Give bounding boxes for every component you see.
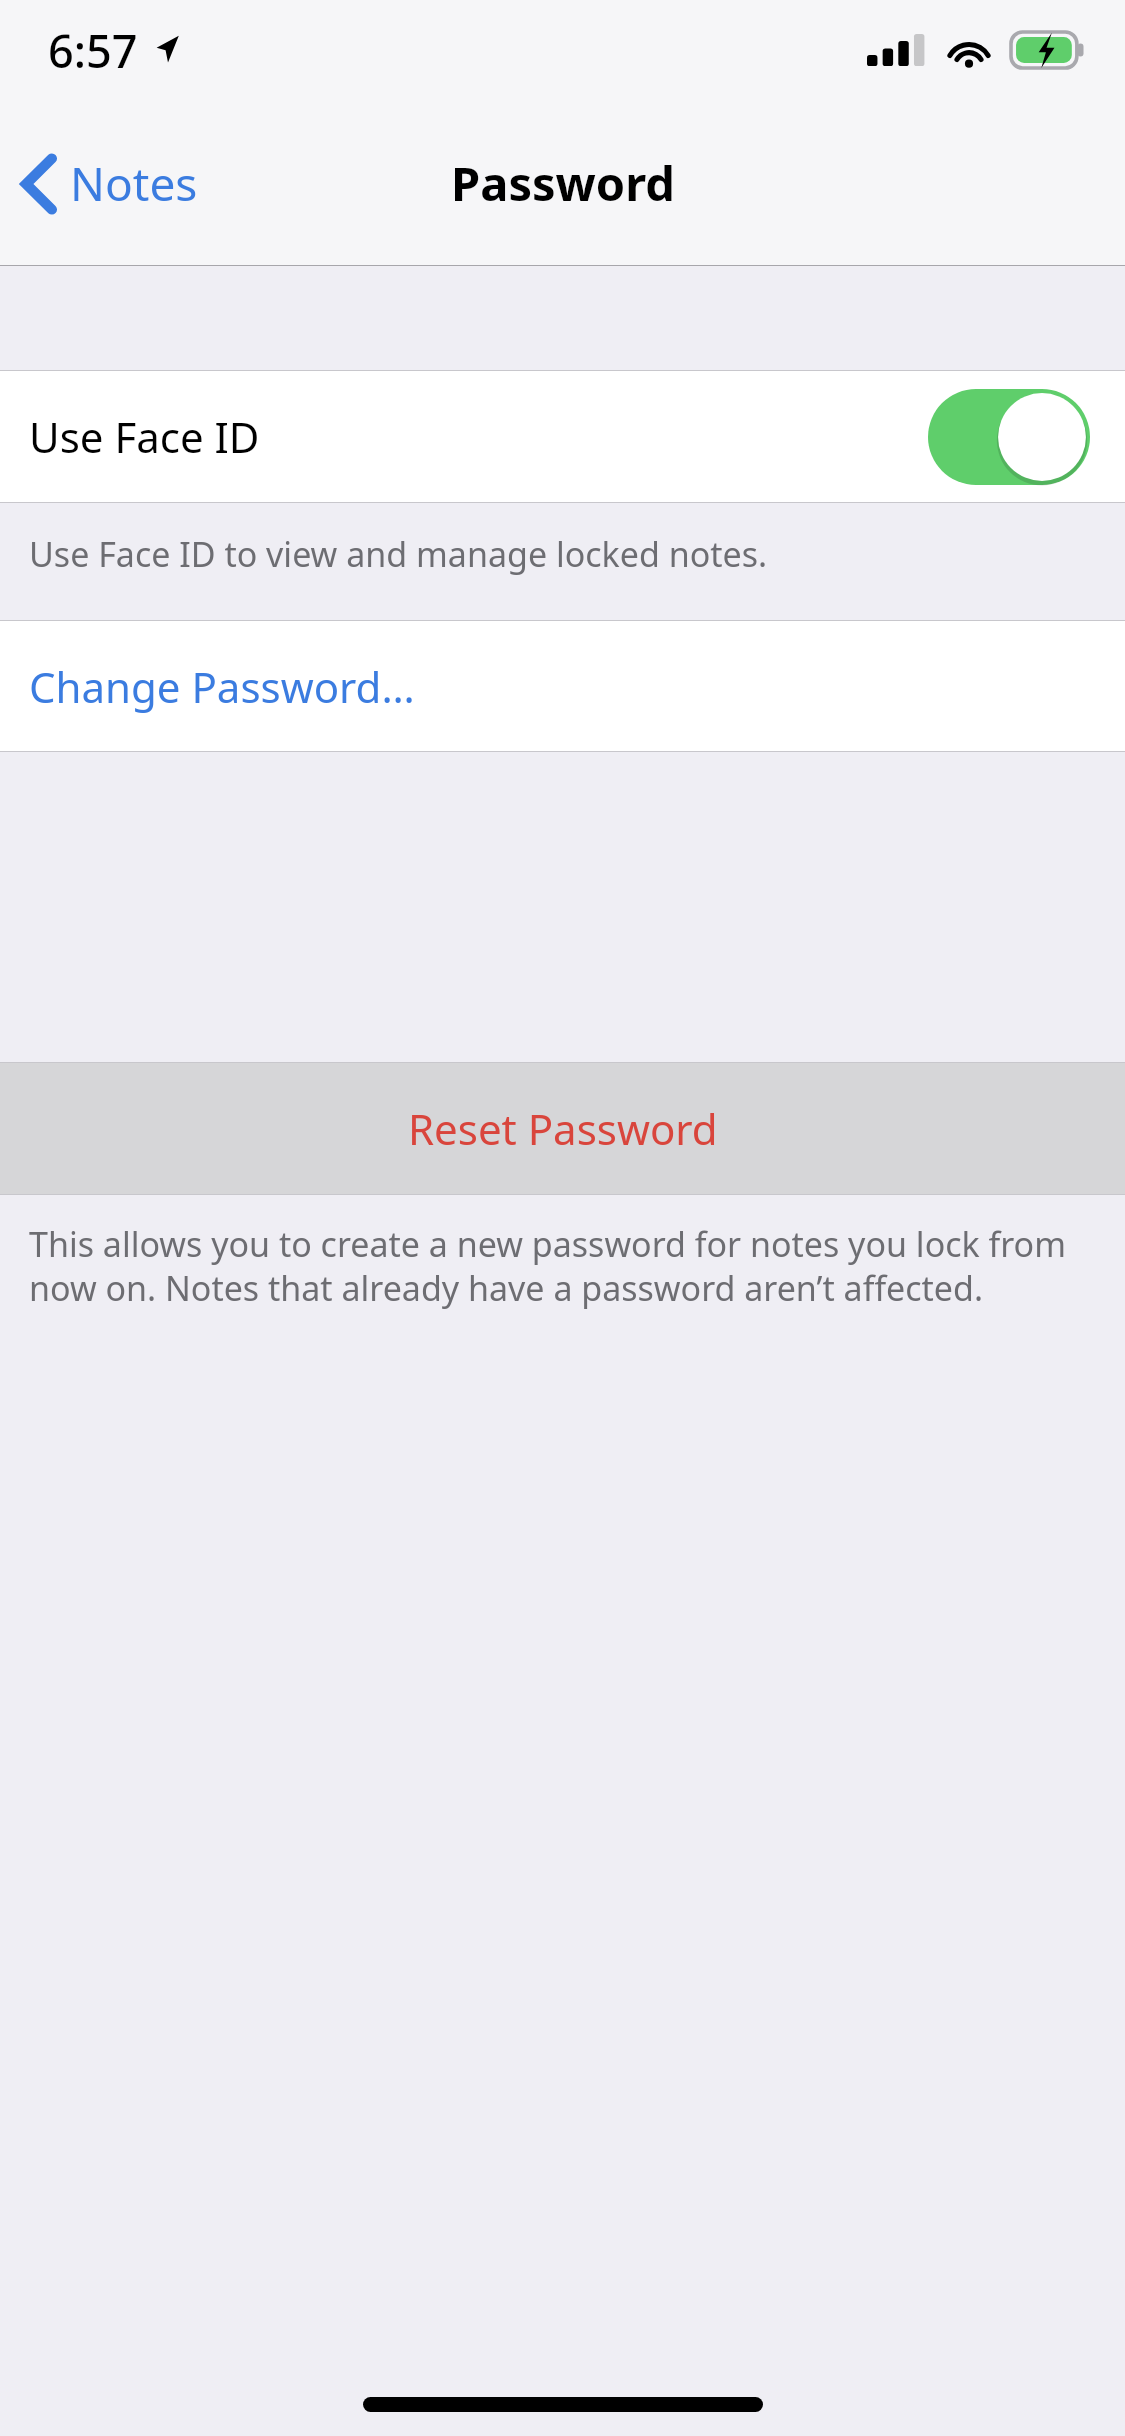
button[interactable]: Use Face ID: [0, 371, 1125, 502]
staticText: Reset Password: [408, 1100, 718, 1157]
staticText: This allows you to create a new password…: [29, 1221, 1085, 1311]
button[interactable]: Change Password…: [0, 621, 1125, 751]
staticText: 6:57: [48, 20, 138, 81]
button[interactable]: Reset Password: [0, 1063, 1125, 1194]
staticText: Notes: [70, 152, 198, 215]
staticText: Use Face ID to view and manage locked no…: [29, 531, 768, 577]
button[interactable]: Back: [0, 140, 216, 227]
other: Back: [22, 155, 56, 213]
staticText: Password: [451, 151, 675, 215]
button[interactable]: Use Face ID toggle: [928, 389, 1090, 485]
staticText: Use Face ID: [29, 408, 260, 465]
staticText: Change Password…: [29, 658, 415, 715]
